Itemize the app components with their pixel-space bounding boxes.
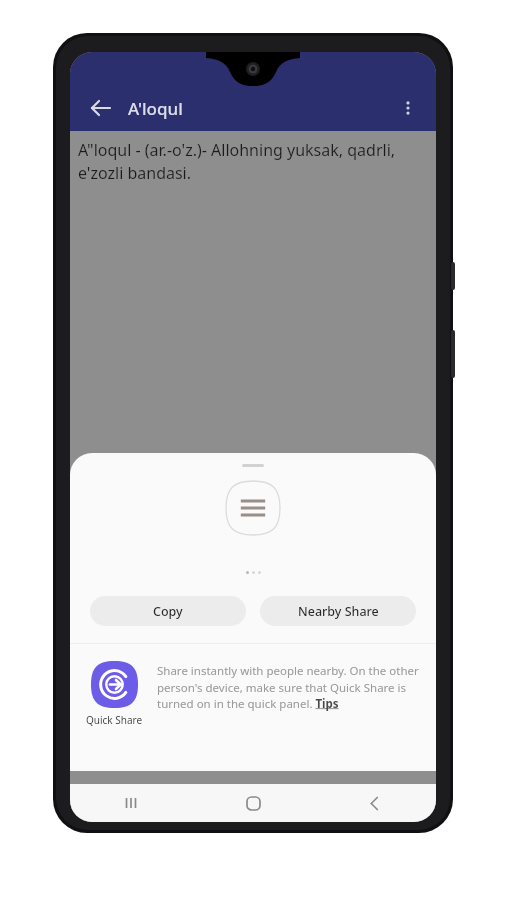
staticText: Share instantly with people nearby. On t… <box>157 663 420 711</box>
button[interactable]: Copy <box>90 596 246 626</box>
staticText: Nearby Share <box>298 603 379 620</box>
button[interactable]: Recent apps <box>70 784 192 822</box>
button[interactable]: Back <box>314 784 436 822</box>
staticText: A"loqul - (ar.-o'z.)- Allohning yuksak, … <box>78 139 428 184</box>
button[interactable]: More options <box>390 90 426 126</box>
button[interactable]: Text file <box>226 481 280 535</box>
button[interactable]: Nearby Share <box>260 596 416 626</box>
staticText: A'loqul <box>128 97 183 120</box>
button[interactable]: Home <box>192 784 314 822</box>
staticText: Quick Share <box>86 713 143 727</box>
button[interactable]: Back <box>82 90 118 126</box>
staticText: Copy <box>153 603 183 620</box>
button[interactable]: Quick Share <box>70 661 436 727</box>
